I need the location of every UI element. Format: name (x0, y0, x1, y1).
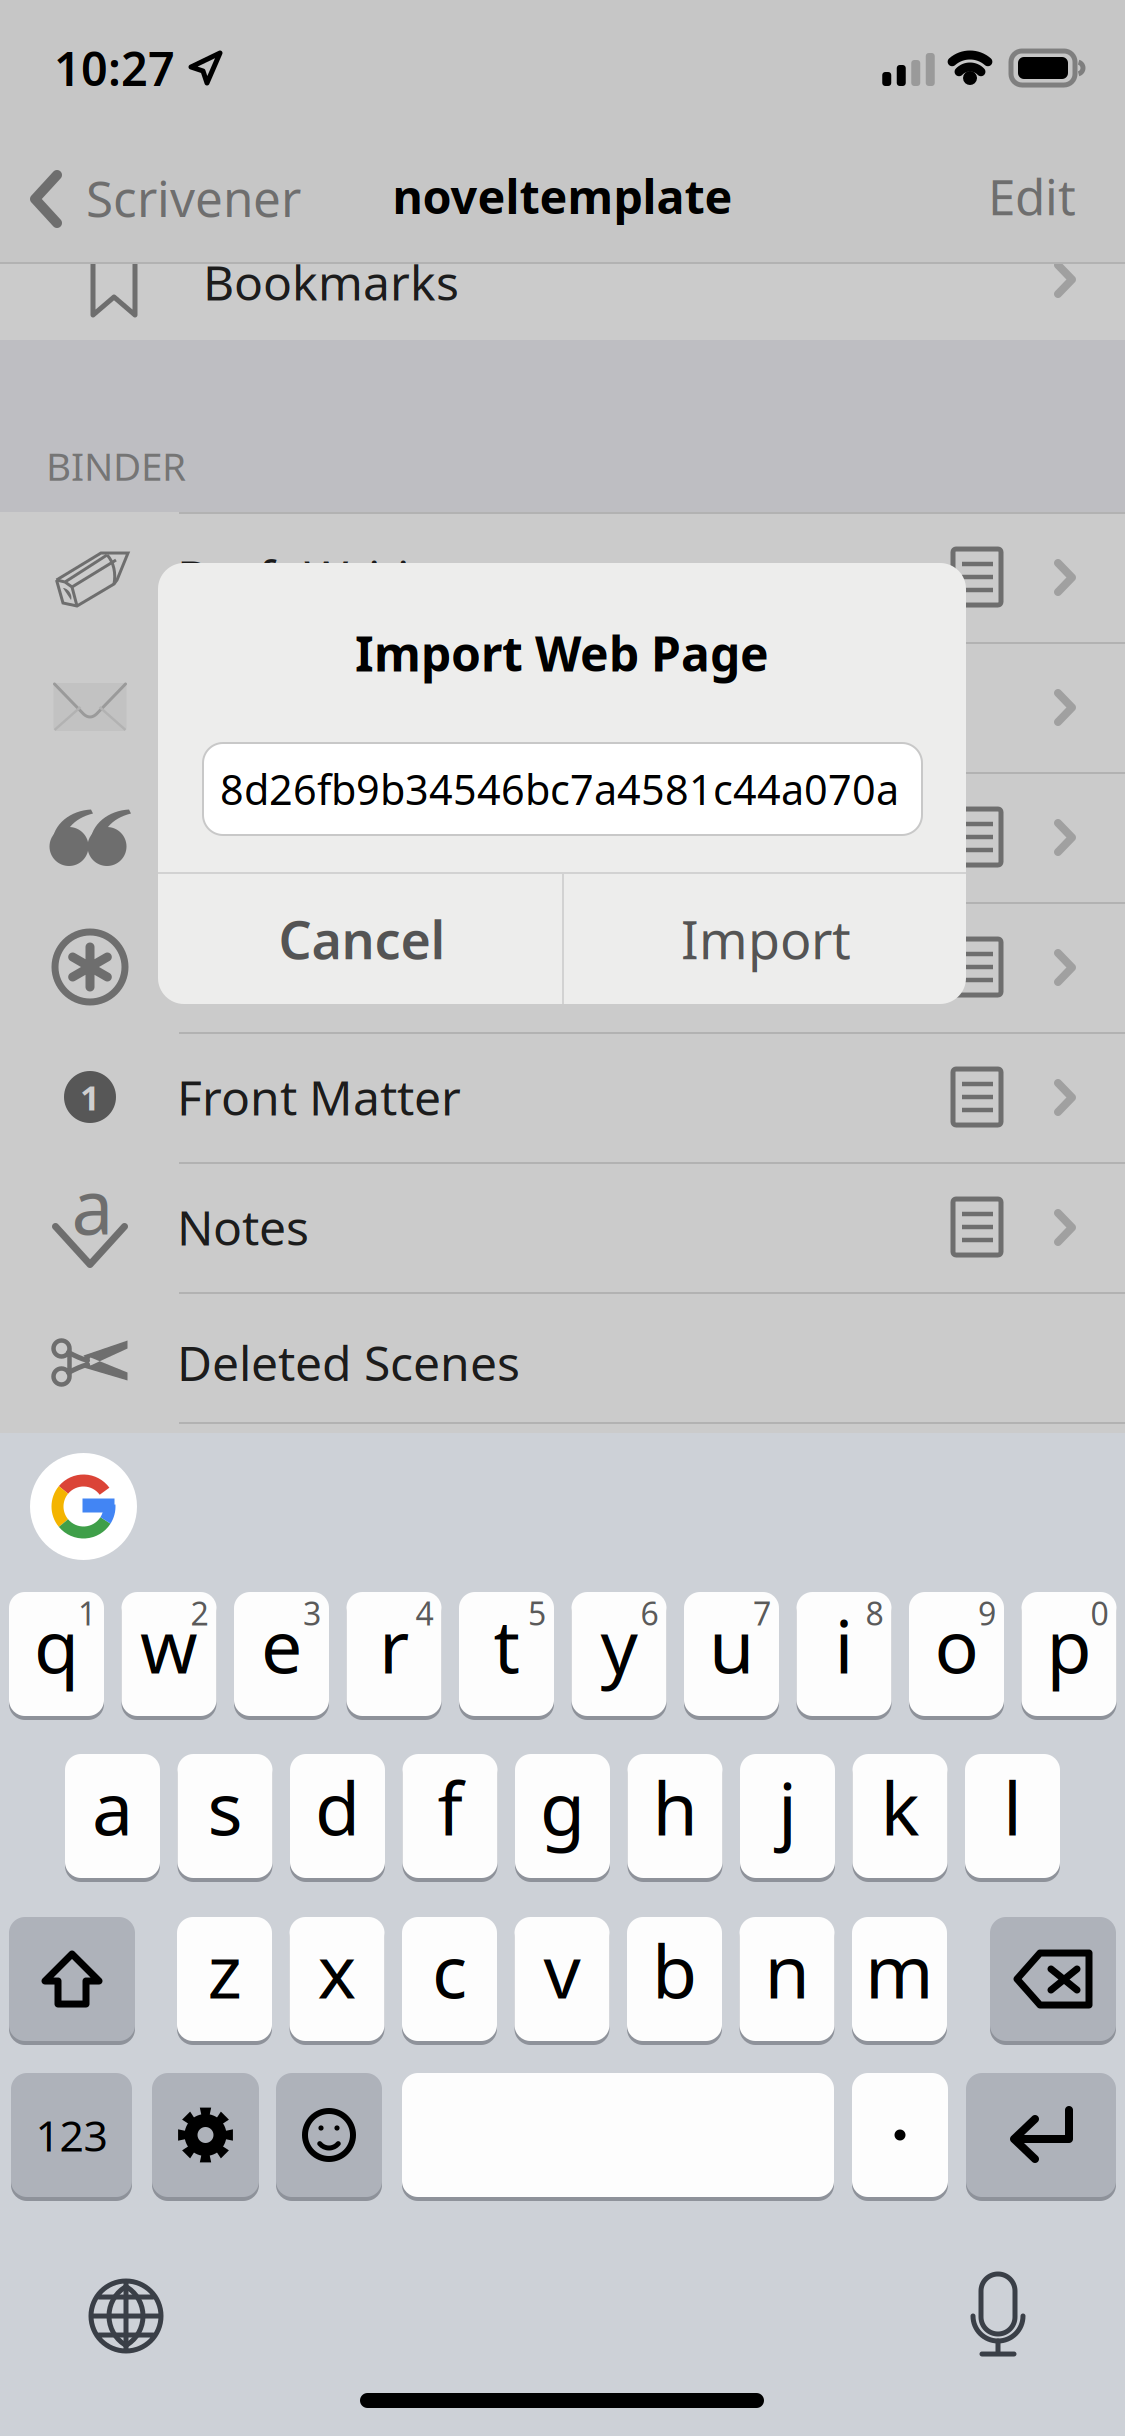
staticText: Cancel (278, 904, 445, 974)
button[interactable]: Emoji (276, 2071, 382, 2199)
staticText: l (1003, 1758, 1022, 1856)
staticText: k (880, 1758, 919, 1856)
button[interactable]: v (514, 1915, 609, 2043)
staticText: p (1046, 1596, 1091, 1694)
button[interactable]: y (571, 1590, 666, 1718)
staticText: n (764, 1921, 809, 2019)
staticText: 9 (978, 1592, 996, 1634)
button[interactable]: Dictation (968, 2272, 1028, 2358)
staticText: Draft Writing (177, 545, 469, 609)
button[interactable]: Draft Writing (0, 512, 1125, 642)
button[interactable]: z (177, 1915, 272, 2043)
button[interactable]: j (740, 1752, 835, 1880)
staticText: v (543, 1921, 580, 2019)
button[interactable]: t (459, 1590, 554, 1718)
button[interactable]: Cancel (160, 874, 564, 1004)
button[interactable]: Keyboard settings (152, 2071, 259, 2199)
button[interactable]: q (9, 1590, 104, 1718)
button[interactable]: Template Sheets (0, 902, 1125, 1032)
staticText: Bookmarks (203, 250, 459, 314)
staticText: Deleted Scenes (177, 1331, 520, 1394)
button[interactable]: period (852, 2071, 948, 2199)
button[interactable]: 123 (11, 2071, 132, 2199)
staticText: a (71, 1156, 113, 1255)
button[interactable]: u (684, 1590, 779, 1718)
staticText: 8d26fb9b34546bc7a4581c44a070a (220, 762, 899, 816)
button[interactable]: Delete (990, 1915, 1116, 2043)
button[interactable]: 1 (0, 1032, 1125, 1162)
staticText: 1 (78, 1592, 96, 1634)
staticText: Quotes (177, 805, 340, 869)
button[interactable]: p (1021, 1590, 1116, 1718)
staticText: c (432, 1921, 467, 2019)
staticText: b (652, 1921, 697, 2019)
staticText: 2 (190, 1592, 208, 1634)
staticText: 123 (35, 2107, 107, 2163)
button[interactable]: x (289, 1915, 384, 2043)
staticText: s (207, 1758, 242, 1856)
staticText: q (34, 1596, 79, 1694)
button[interactable]: b (627, 1915, 722, 2043)
button[interactable]: a (0, 1162, 1125, 1292)
staticText: m (865, 1921, 934, 2019)
staticText: a (92, 1758, 133, 1856)
staticText: r (379, 1596, 409, 1694)
staticText: o (934, 1596, 978, 1694)
button[interactable]: h (627, 1752, 722, 1880)
staticText: e (261, 1596, 302, 1694)
staticText: j (778, 1758, 797, 1856)
staticText: 4 (415, 1592, 433, 1634)
button[interactable]: n (739, 1915, 834, 2043)
button[interactable]: d (290, 1752, 385, 1880)
button[interactable]: a (65, 1752, 160, 1880)
staticText: Import Web Page (355, 621, 769, 685)
button[interactable]: i (796, 1590, 891, 1718)
button[interactable]: l (965, 1752, 1060, 1880)
button[interactable]: Shift (9, 1915, 135, 2043)
button[interactable]: Research (0, 642, 1125, 772)
button[interactable]: s (177, 1752, 272, 1880)
button[interactable]: e (234, 1590, 329, 1718)
button[interactable]: Deleted Scenes (0, 1297, 1125, 1427)
button[interactable]: Edit (896, 156, 1076, 236)
staticText: Front Matter (177, 1065, 461, 1129)
staticText: 0 (1090, 1592, 1108, 1634)
staticText: g (540, 1758, 585, 1856)
button[interactable]: Scrivener (0, 0, 320, 110)
staticText: 10:27 (54, 37, 175, 99)
button[interactable]: Quotes (0, 772, 1125, 902)
staticText: f (437, 1758, 462, 1856)
staticText: d (315, 1758, 360, 1856)
button[interactable]: space (402, 2071, 834, 2199)
staticText: h (652, 1758, 697, 1856)
button[interactable]: c (402, 1915, 497, 2043)
staticText: 7 (753, 1592, 771, 1634)
staticText: Edit (988, 163, 1076, 229)
staticText: x (317, 1921, 356, 2019)
staticText: 8 (865, 1592, 883, 1634)
staticText: u (709, 1596, 754, 1694)
button[interactable]: return (966, 2071, 1116, 2199)
staticText: 1 (80, 1074, 100, 1120)
button[interactable]: Bookmarks (0, 263, 1125, 340)
button[interactable]: r (346, 1590, 441, 1718)
button[interactable]: w (121, 1590, 216, 1718)
button[interactable]: m (852, 1915, 947, 2043)
staticText: z (207, 1921, 241, 2019)
staticText: BINDER (46, 440, 186, 491)
staticText: t (493, 1596, 519, 1694)
button[interactable]: Import (564, 874, 968, 1004)
button[interactable]: k (852, 1752, 947, 1880)
button[interactable]: Change keyboard (88, 2278, 164, 2354)
staticText: Scrivener (86, 165, 301, 230)
staticText: i (834, 1596, 853, 1694)
button[interactable]: f (402, 1752, 497, 1880)
staticText: Notes (177, 1195, 309, 1259)
button[interactable]: o (909, 1590, 1004, 1718)
button[interactable]: g (515, 1752, 610, 1880)
staticText: w (140, 1596, 198, 1694)
staticText: 6 (640, 1592, 658, 1634)
staticText: 5 (528, 1592, 546, 1634)
staticText: Import (681, 904, 851, 974)
